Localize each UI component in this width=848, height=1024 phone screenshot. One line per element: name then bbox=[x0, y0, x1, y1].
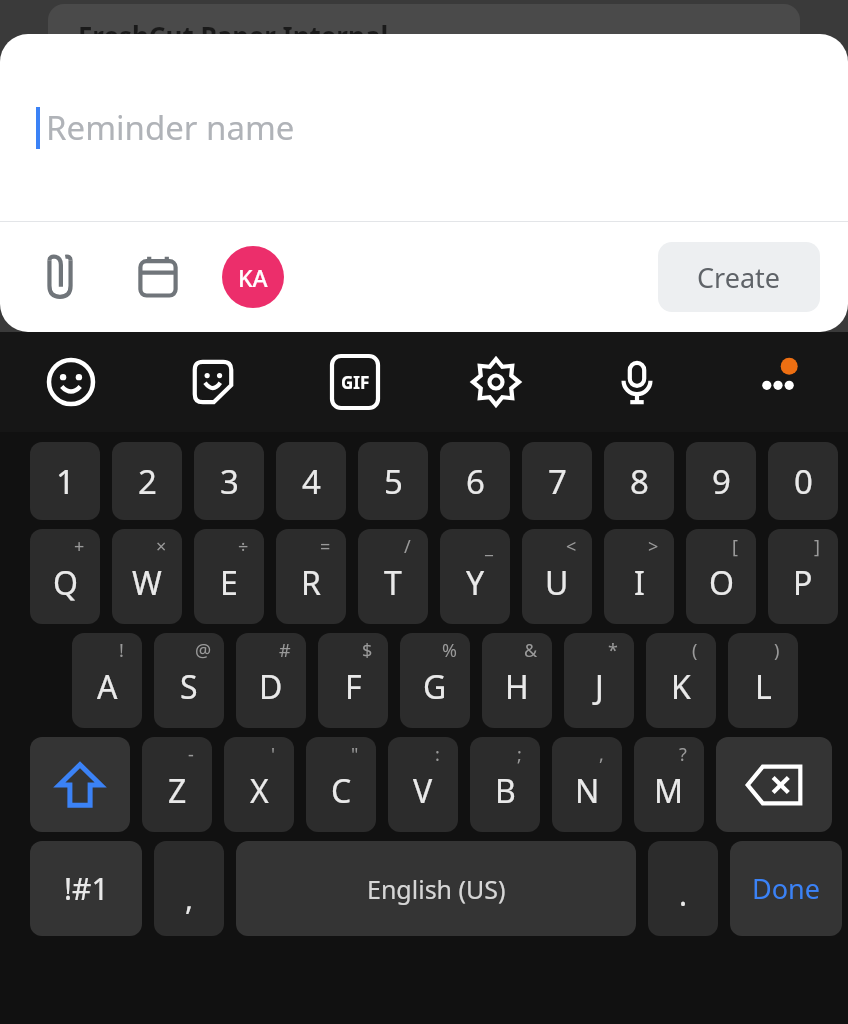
button[interactable]: = bbox=[276, 529, 346, 624]
button[interactable]: & bbox=[482, 633, 552, 728]
button[interactable]: ' bbox=[224, 737, 294, 832]
button[interactable]: 6 bbox=[440, 442, 510, 520]
button[interactable]: Assignee KA bbox=[222, 246, 284, 308]
button[interactable]: 4 bbox=[276, 442, 346, 520]
staticText: Z bbox=[168, 769, 187, 813]
button[interactable]: > bbox=[604, 529, 674, 624]
staticText: F bbox=[345, 665, 362, 709]
staticText: ' bbox=[271, 742, 276, 767]
staticText: L bbox=[755, 665, 772, 709]
button[interactable]: [ bbox=[686, 529, 756, 624]
staticText: # bbox=[279, 638, 291, 663]
button[interactable]: ÷ bbox=[194, 529, 264, 624]
staticText: ? bbox=[679, 742, 687, 767]
button[interactable]: 5 bbox=[358, 442, 428, 520]
staticText: ÷ bbox=[238, 534, 249, 559]
button[interactable]: Create bbox=[658, 242, 820, 312]
button[interactable]: + bbox=[30, 529, 100, 624]
button[interactable]: < bbox=[522, 529, 592, 624]
staticText: FreshCut Paper Internal bbox=[78, 18, 389, 53]
button[interactable]: × bbox=[112, 529, 182, 624]
staticText: 6 bbox=[466, 459, 485, 504]
button[interactable]: 8 bbox=[604, 442, 674, 520]
staticText: R bbox=[301, 561, 321, 605]
button[interactable]: ? bbox=[634, 737, 704, 832]
staticText: M bbox=[654, 769, 684, 813]
button[interactable]: Settings bbox=[425, 332, 566, 432]
staticText: Create bbox=[697, 259, 781, 296]
button[interactable]: , bbox=[552, 737, 622, 832]
button[interactable]: 1 bbox=[30, 442, 100, 520]
staticText: + bbox=[74, 534, 85, 559]
button[interactable]: % bbox=[400, 633, 470, 728]
staticText: 2 bbox=[138, 459, 157, 504]
staticText: X bbox=[250, 769, 269, 813]
button[interactable]: Done bbox=[730, 841, 842, 936]
button[interactable]: * bbox=[564, 633, 634, 728]
button[interactable]: - bbox=[142, 737, 212, 832]
button[interactable]: Attach file bbox=[34, 251, 86, 303]
staticText: - bbox=[188, 742, 194, 767]
staticText: N bbox=[575, 769, 600, 813]
staticText: S bbox=[180, 665, 198, 709]
staticText: ] bbox=[814, 534, 820, 559]
button[interactable]: 0 bbox=[768, 442, 838, 520]
button[interactable]: $ bbox=[318, 633, 388, 728]
staticText: " bbox=[351, 742, 359, 767]
staticText: Done bbox=[752, 870, 820, 907]
staticText: O bbox=[709, 561, 734, 605]
button[interactable]: ) bbox=[728, 633, 798, 728]
button[interactable]: ; bbox=[470, 737, 540, 832]
button[interactable]: ( bbox=[646, 633, 716, 728]
staticText: , bbox=[599, 742, 604, 767]
staticText: 5 bbox=[384, 459, 403, 504]
staticText: W bbox=[132, 561, 162, 605]
button[interactable]: !#1 bbox=[30, 841, 142, 936]
staticText: 7 bbox=[548, 459, 567, 504]
button[interactable]: , bbox=[154, 841, 224, 936]
staticText: 1 bbox=[56, 459, 75, 504]
staticText: × bbox=[156, 534, 167, 559]
button[interactable]: : bbox=[388, 737, 458, 832]
staticText: !#1 bbox=[64, 868, 109, 909]
button[interactable]: Reminder name bbox=[0, 34, 848, 221]
button[interactable]: Shift bbox=[30, 737, 130, 832]
button[interactable]: ! bbox=[72, 633, 142, 728]
button[interactable]: Stickers bbox=[142, 332, 284, 432]
button[interactable]: . bbox=[648, 841, 718, 936]
button[interactable]: 3 bbox=[194, 442, 264, 520]
staticText: ! bbox=[119, 638, 124, 663]
button[interactable]: Emoji bbox=[0, 332, 142, 432]
button[interactable]: 2 bbox=[112, 442, 182, 520]
button[interactable]: Voice input bbox=[566, 332, 707, 432]
staticText: @ bbox=[195, 638, 212, 663]
button[interactable]: @ bbox=[154, 633, 224, 728]
button[interactable]: 7 bbox=[522, 442, 592, 520]
button[interactable]: Backspace bbox=[716, 737, 832, 832]
staticText: English (US) bbox=[367, 872, 506, 906]
staticText: ) bbox=[774, 638, 780, 663]
button[interactable]: More options bbox=[707, 332, 848, 432]
staticText: Reminder name bbox=[46, 105, 295, 150]
staticText: J bbox=[595, 665, 604, 709]
staticText: Y bbox=[466, 561, 485, 605]
button[interactable]: GIF bbox=[284, 332, 425, 432]
button[interactable]: # bbox=[236, 633, 306, 728]
button[interactable]: / bbox=[358, 529, 428, 624]
button[interactable]: English (US) bbox=[236, 841, 636, 936]
staticText: I bbox=[634, 561, 645, 605]
staticText: 3 bbox=[220, 459, 239, 504]
staticText: T bbox=[384, 561, 402, 605]
staticText: G bbox=[423, 665, 447, 709]
staticText: . bbox=[679, 874, 688, 915]
button[interactable]: " bbox=[306, 737, 376, 832]
staticText: $ bbox=[362, 638, 373, 663]
button[interactable]: Set date bbox=[132, 251, 184, 303]
staticText: % bbox=[442, 638, 457, 663]
staticText: [ bbox=[732, 534, 738, 559]
button[interactable]: _ bbox=[440, 529, 510, 624]
button[interactable]: ] bbox=[768, 529, 838, 624]
staticText: & bbox=[524, 638, 538, 663]
button[interactable]: 9 bbox=[686, 442, 756, 520]
staticText: C bbox=[331, 769, 352, 813]
